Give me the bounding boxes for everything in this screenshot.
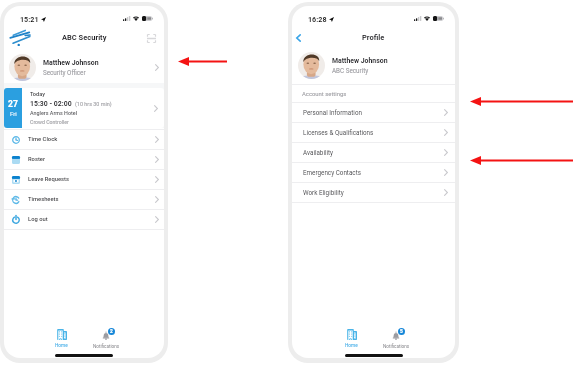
staticText: 15:30 - 02:00 <box>30 100 72 108</box>
staticText: Leave Requests <box>28 176 70 183</box>
button[interactable]: Leave Requests <box>4 170 164 189</box>
staticText: Emergency Contacts <box>303 169 361 176</box>
staticText: Personal Information <box>303 109 362 116</box>
button[interactable]: Home <box>39 327 84 350</box>
staticText: Profile <box>362 33 385 42</box>
button[interactable]: Licenses & Qualifications <box>292 123 455 142</box>
staticText: Security Officer <box>43 69 86 76</box>
button[interactable]: Time Clock <box>4 130 164 149</box>
staticText: Matthew Johnson <box>332 57 388 65</box>
staticText: Anglers Arms Hotel <box>30 110 78 116</box>
staticText: ABC Security <box>332 67 369 74</box>
button[interactable]: Availability <box>292 143 455 162</box>
staticText: 27 <box>8 99 18 109</box>
staticText: Home <box>55 343 68 349</box>
staticText: 2 <box>110 329 113 335</box>
staticText: Fri <box>10 110 17 117</box>
staticText: ABC Security <box>62 33 107 42</box>
staticText: Account settings <box>302 91 347 98</box>
button[interactable]: Scan QR code <box>143 30 159 46</box>
staticText: 5 <box>400 329 403 335</box>
staticText: Log out <box>28 216 48 223</box>
button[interactable]: Work Eligibility <box>292 183 455 202</box>
staticText: Crowd Controller <box>30 119 69 125</box>
button[interactable]: Matthew Johnson <box>4 47 164 88</box>
button[interactable]: Personal Information <box>292 103 455 122</box>
staticText: Today <box>30 91 45 98</box>
button[interactable]: 27 <box>4 88 164 128</box>
button[interactable]: Company logo <box>6 28 33 47</box>
button[interactable]: Home <box>329 327 374 350</box>
button[interactable]: 2 <box>84 327 129 350</box>
staticText: 15:21 <box>20 15 39 23</box>
staticText: Licenses & Qualifications <box>303 129 374 136</box>
staticText: Roster <box>28 156 45 163</box>
button[interactable]: Timesheets <box>4 190 164 209</box>
staticText: Notifications <box>383 344 410 349</box>
button[interactable]: 5 <box>374 327 419 350</box>
button[interactable]: Emergency Contacts <box>292 163 455 182</box>
staticText: Time Clock <box>28 136 58 143</box>
staticText: Matthew Johnson <box>43 59 99 67</box>
staticText: 16:28 <box>308 15 327 23</box>
staticText: Work Eligibility <box>303 189 344 196</box>
staticText: Notifications <box>93 344 120 349</box>
button[interactable]: Log out <box>4 210 164 229</box>
staticText: (10 hrs 30 min) <box>75 101 112 107</box>
button[interactable]: Roster <box>4 150 164 169</box>
button[interactable]: Back <box>292 28 305 47</box>
staticText: Timesheets <box>28 196 59 203</box>
staticText: Availability <box>303 149 334 156</box>
staticText: Home <box>345 343 358 349</box>
